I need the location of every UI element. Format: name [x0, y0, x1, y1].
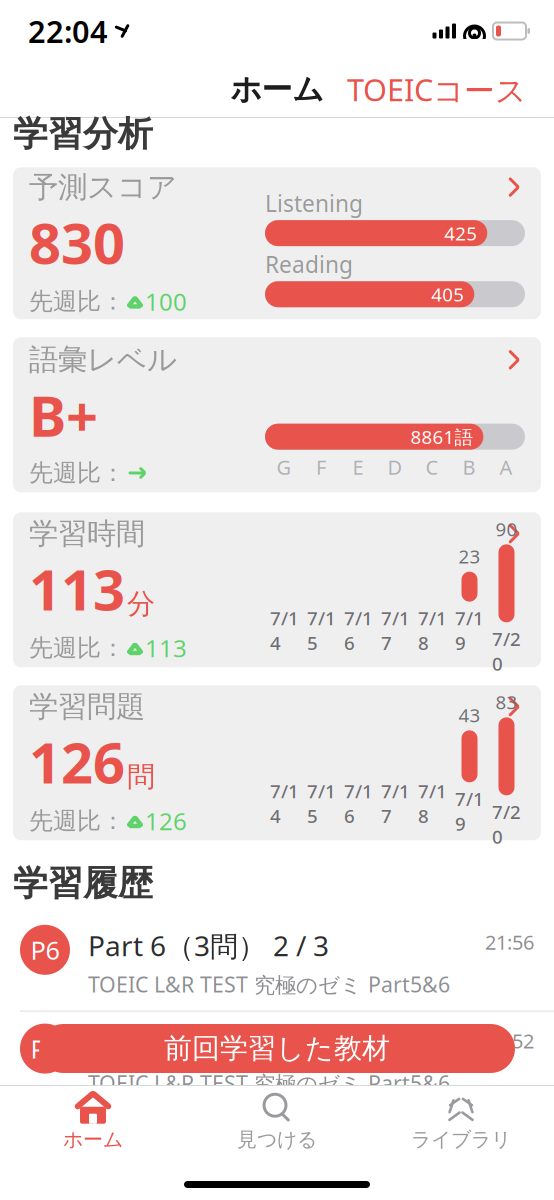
staticText: 23 [458, 544, 480, 569]
button[interactable]: P6 [0, 1012, 554, 1110]
staticText: 先週比： [29, 633, 125, 663]
button[interactable]: 学習問題 [13, 685, 541, 840]
staticText: F [316, 454, 326, 480]
staticText: 113 [29, 552, 125, 626]
staticText: B [462, 454, 475, 480]
staticText: 7/17 [381, 779, 410, 828]
button[interactable]: 語彙レベル [13, 337, 541, 492]
button[interactable]: 予測スコア [13, 167, 541, 319]
staticText: 21:56 [485, 929, 534, 955]
staticText: 100 [145, 285, 187, 317]
staticText: A [499, 454, 512, 480]
staticText: ホーム [230, 71, 323, 108]
staticText: 43 [458, 702, 480, 727]
staticText: 8861語 [410, 424, 473, 449]
staticText: P6 [30, 1032, 59, 1065]
staticText: 126 [145, 805, 187, 837]
staticText: TOEIC L&R TEST 究極のゼミ Part5&6 [88, 1069, 450, 1097]
staticText: 分 [127, 587, 155, 621]
staticText: 7/20 [492, 799, 521, 849]
staticText: 7/19 [455, 606, 484, 655]
staticText: 問 [127, 760, 155, 794]
staticText: 見つける [237, 1127, 317, 1152]
staticText: TOEIC L&R TEST 究極のゼミ Part5&6 [88, 970, 450, 998]
staticText: 7/19 [455, 786, 484, 836]
button[interactable]: TOEICコース [333, 61, 540, 118]
staticText: 126 [29, 725, 125, 799]
staticText: 21:52 [485, 1028, 534, 1054]
staticText: 語彙レベル [29, 342, 177, 378]
staticText: 学習時間 [29, 516, 145, 552]
staticText: E [352, 454, 363, 480]
staticText: 学習履歴 [13, 862, 153, 905]
staticText: 22:04 [28, 11, 108, 51]
staticText: 113 [145, 632, 187, 664]
staticText: ホーム [63, 1127, 123, 1152]
staticText: 先週比： [29, 458, 125, 488]
staticText: 90 [495, 516, 517, 541]
staticText: 前回学習した教材 [164, 1031, 390, 1066]
staticText: ライブラリ [411, 1127, 511, 1152]
staticText: B+ [29, 378, 98, 452]
button[interactable]: 見つける [185, 1090, 369, 1154]
staticText: C [425, 454, 438, 480]
staticText: G [276, 454, 291, 480]
staticText: 83 [495, 689, 517, 714]
button[interactable]: 学習時間 [13, 512, 541, 667]
button[interactable]: ライブラリ [369, 1090, 553, 1154]
staticText: 学習分析 [13, 113, 153, 155]
staticText: 先週比： [29, 806, 125, 836]
staticText: 7/17 [381, 606, 410, 655]
staticText: P6 [30, 933, 59, 967]
staticText: Reading [265, 249, 353, 279]
staticText: 7/16 [344, 606, 373, 655]
staticText: TOEICコース [347, 69, 526, 110]
staticText: 先週比： [29, 287, 125, 316]
staticText: 学習問題 [29, 689, 145, 725]
staticText: 7/16 [344, 779, 373, 828]
staticText: 425 [444, 221, 477, 245]
staticText: 405 [431, 282, 464, 307]
staticText: 830 [29, 205, 125, 279]
staticText: Part 6（3問） 2 / 3 [88, 927, 329, 964]
button[interactable]: 前回学習した教材 [39, 1024, 515, 1073]
button[interactable]: ホーム [1, 1090, 185, 1154]
staticText: 予測スコア [29, 169, 177, 205]
staticText: 7/18 [418, 779, 447, 828]
staticText: Listening [265, 188, 363, 218]
staticText: 7/20 [492, 626, 521, 676]
staticText: D [387, 454, 402, 480]
button[interactable]: P6 [0, 913, 554, 1012]
staticText: 7/14 [270, 606, 299, 655]
staticText: 7/15 [307, 606, 336, 655]
staticText: Part 6（4問） 4 / 4 [88, 1026, 329, 1063]
staticText: 7/18 [418, 606, 447, 655]
staticText: 7/14 [270, 779, 299, 828]
staticText: 7/15 [307, 779, 336, 828]
